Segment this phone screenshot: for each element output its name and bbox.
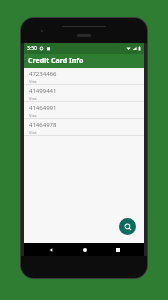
staticText: 41464991 — [29, 104, 57, 112]
staticText: Visa — [29, 130, 37, 135]
staticText: Visa — [29, 79, 37, 84]
button[interactable]: 41499441 — [24, 85, 144, 102]
staticText: 41499441 — [29, 87, 57, 95]
staticText: 41464978 — [29, 121, 57, 129]
button[interactable]: 41464978 — [24, 119, 144, 136]
button[interactable]: Search — [119, 218, 136, 235]
button[interactable]: Back — [44, 243, 57, 256]
staticText: 47234466 — [29, 70, 57, 78]
staticText: Visa — [29, 113, 37, 118]
button[interactable]: 41464991 — [24, 102, 144, 119]
staticText: Visa — [29, 96, 37, 101]
staticText: Credit Card Info — [28, 56, 84, 66]
button[interactable]: Recent apps — [111, 243, 124, 256]
staticText: 3:50 — [27, 45, 37, 52]
button[interactable]: 47234466 — [24, 68, 144, 85]
button[interactable]: Home — [78, 243, 91, 256]
